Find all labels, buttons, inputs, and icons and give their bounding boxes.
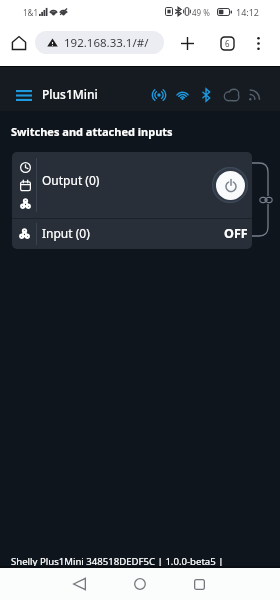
button[interactable]: 192.168.33.1/#/ xyxy=(35,31,164,54)
button[interactable]: Bluetooth xyxy=(199,87,214,102)
button[interactable]: Access point xyxy=(151,87,167,103)
staticText: 1&1 xyxy=(23,7,39,18)
staticText: OFF xyxy=(224,225,248,242)
button[interactable]: Cloud xyxy=(224,87,239,102)
staticText: Switches and attached inputs xyxy=(11,124,173,139)
staticText: 192.168.33.1/#/ xyxy=(64,35,149,51)
button[interactable]: Recent apps xyxy=(182,568,216,600)
button[interactable]: More options xyxy=(248,30,269,56)
button[interactable]: Output (0) xyxy=(12,152,252,218)
button[interactable]: Input (0) xyxy=(12,219,252,249)
staticText: Input (0) xyxy=(42,225,90,241)
button[interactable]: MQTT xyxy=(247,87,262,102)
staticText: Plus1Mini xyxy=(42,86,98,102)
button[interactable]: Home xyxy=(6,29,31,56)
button[interactable]: Menu xyxy=(13,85,35,105)
staticText: Output (0) xyxy=(42,172,100,188)
button[interactable]: WiFi xyxy=(175,87,190,102)
button[interactable]: New tab xyxy=(175,30,200,56)
button[interactable]: Toggle output xyxy=(212,167,248,203)
staticText: 6 xyxy=(225,38,230,49)
staticText: 49 % xyxy=(192,7,210,18)
button[interactable]: Tabs xyxy=(215,30,239,56)
staticText: 14:12 xyxy=(236,6,260,18)
staticText: Shelly Plus1Mini 348518DEDF5C | 1.0.0-be… xyxy=(11,555,224,568)
button[interactable]: Back xyxy=(62,568,96,600)
button[interactable]: Home xyxy=(123,568,157,600)
